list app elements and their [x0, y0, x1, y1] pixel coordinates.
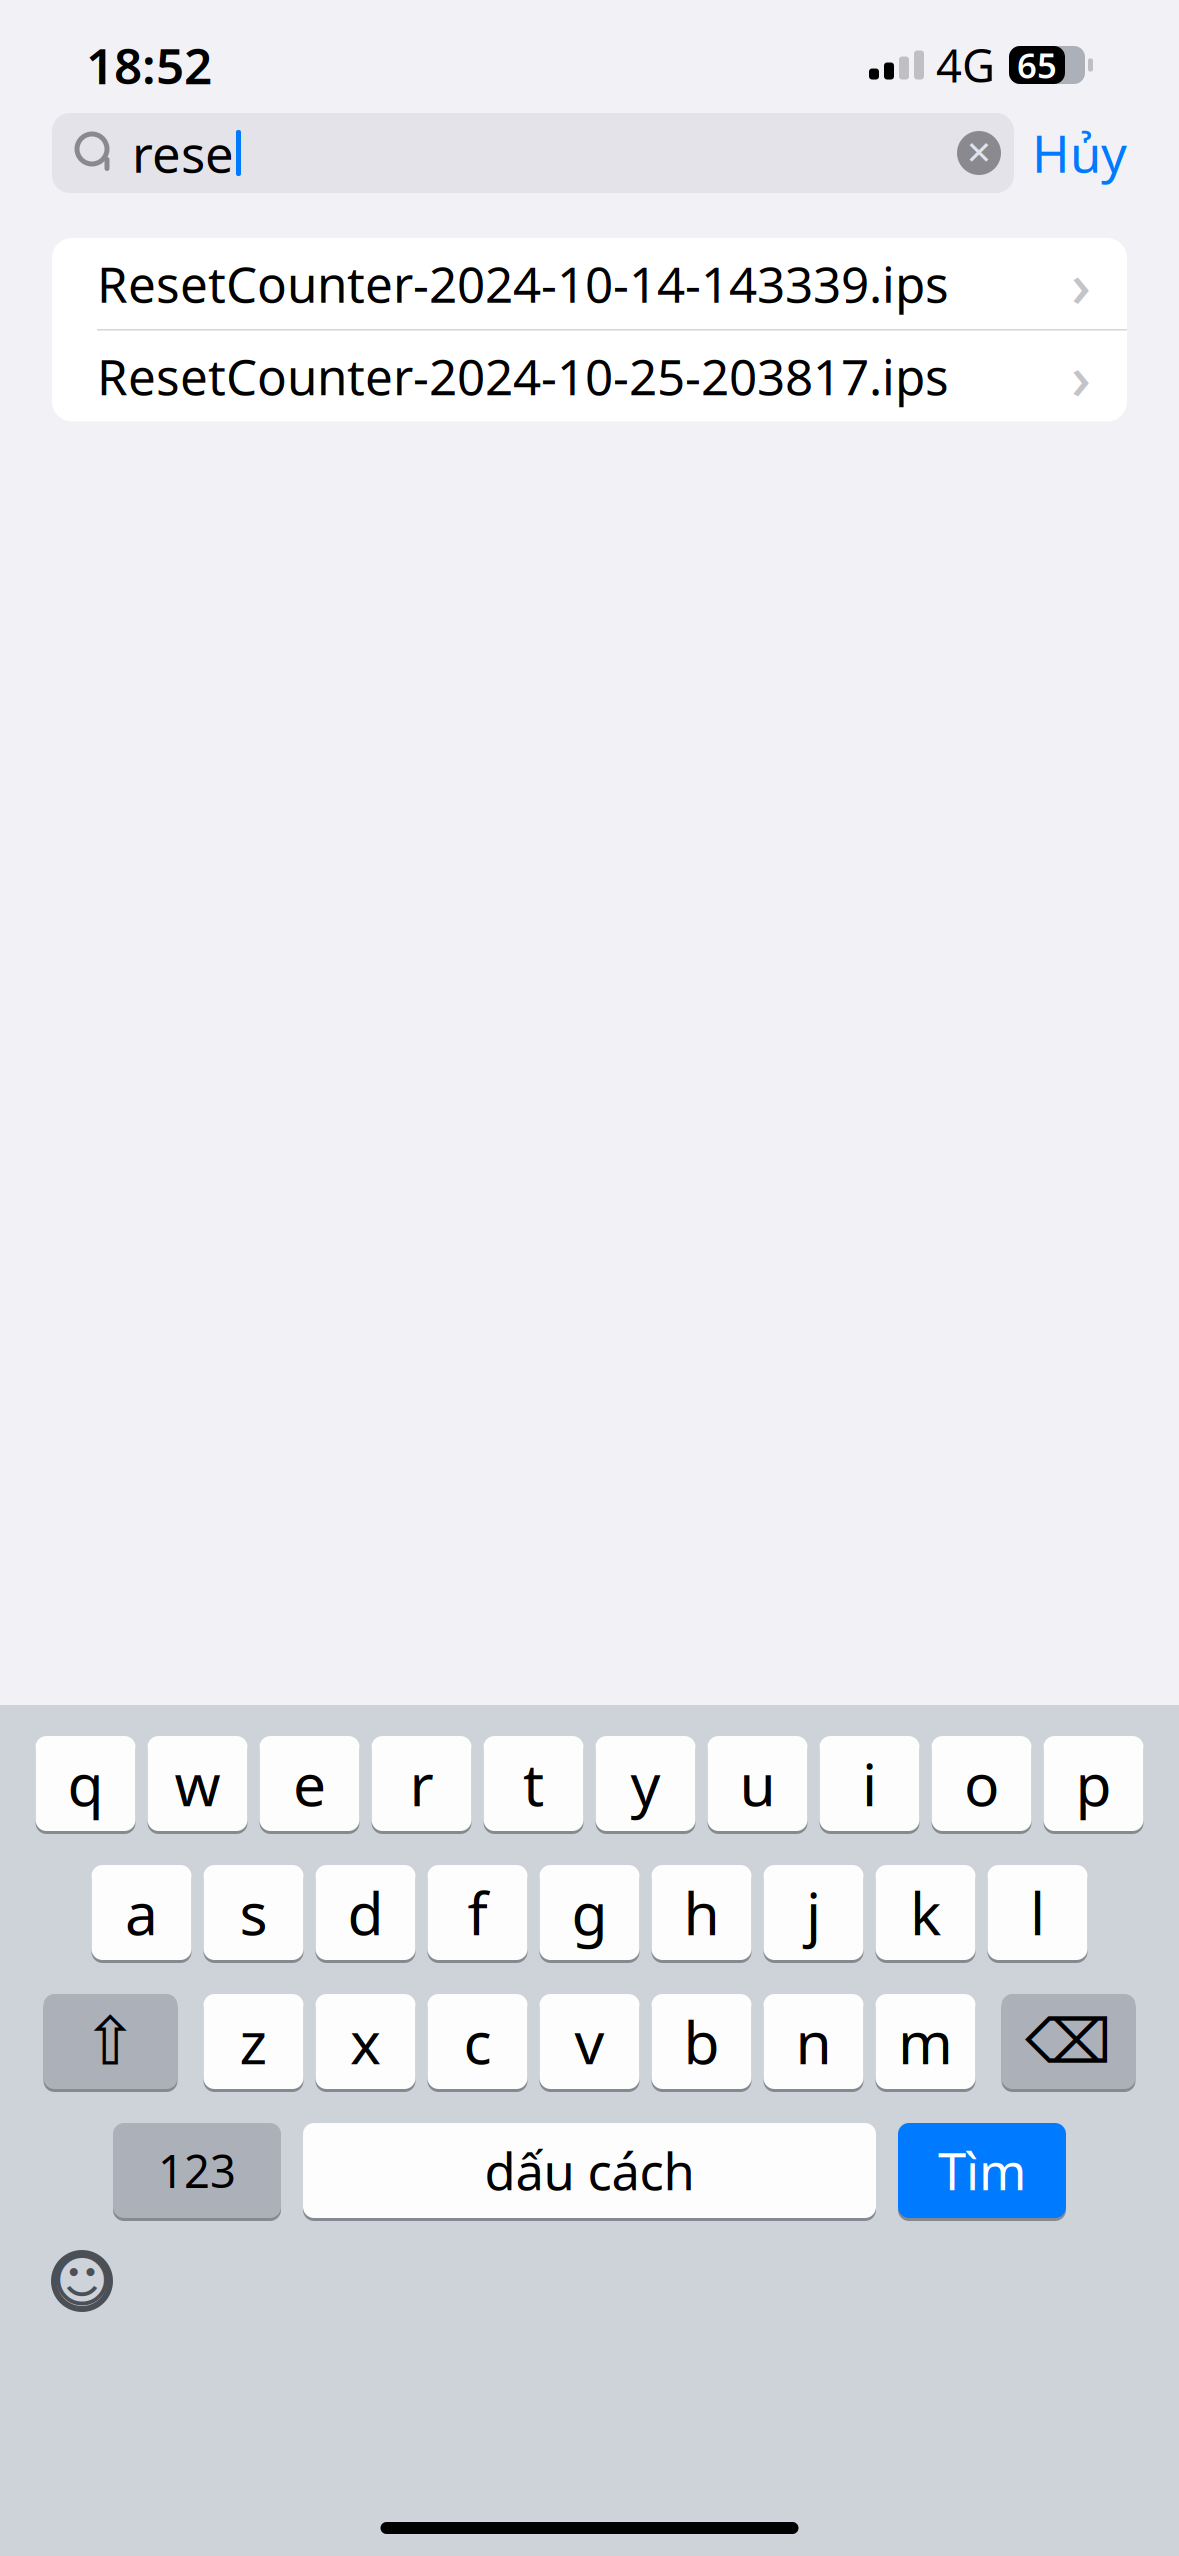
staticText: d	[347, 1873, 383, 1951]
button[interactable]: Hủy	[1014, 113, 1145, 193]
staticText: ResetCounter-2024-10-14-143339.ips	[97, 251, 949, 316]
staticText: ›	[1071, 335, 1091, 417]
button[interactable]: i	[819, 1733, 919, 1834]
staticText: 4G	[936, 35, 995, 95]
staticText: ›	[1071, 243, 1091, 324]
button[interactable]: x	[315, 1991, 415, 2092]
staticText: ⇧	[82, 2004, 138, 2079]
button[interactable]: q	[35, 1733, 135, 1834]
button[interactable]: dấu cách	[303, 2120, 876, 2221]
staticText: rese	[132, 119, 234, 187]
staticText: ResetCounter-2024-10-25-203817.ips	[97, 343, 949, 409]
staticText: t	[523, 1744, 544, 1822]
staticText: u	[739, 1744, 775, 1822]
staticText: r	[409, 1744, 433, 1822]
button[interactable]: w	[147, 1733, 247, 1834]
staticText: p	[1075, 1744, 1111, 1822]
staticText: g	[571, 1873, 607, 1951]
staticText: Tìm	[938, 2137, 1026, 2204]
button[interactable]: Tìm	[898, 2120, 1066, 2221]
button[interactable]: u	[707, 1733, 807, 1834]
staticText: 65	[1017, 42, 1057, 88]
button[interactable]: d	[315, 1862, 415, 1963]
button[interactable]: f	[427, 1862, 527, 1963]
button[interactable]: l	[987, 1862, 1087, 1963]
button[interactable]: r	[371, 1733, 471, 1834]
button[interactable]: e	[259, 1733, 359, 1834]
staticText: l	[1030, 1873, 1045, 1951]
staticText: m	[898, 2002, 953, 2080]
button[interactable]: ResetCounter-2024-10-25-203817.ips	[52, 330, 1127, 421]
staticText: y	[630, 1744, 660, 1822]
button[interactable]: s	[203, 1862, 303, 1963]
staticText: ⌫	[1025, 2007, 1112, 2076]
button[interactable]: y	[595, 1733, 695, 1834]
button[interactable]: b	[651, 1991, 751, 2092]
staticText: q	[67, 1744, 103, 1822]
button[interactable]: Clear text	[944, 118, 1014, 188]
button[interactable]: a	[91, 1862, 191, 1963]
staticText: o	[964, 1744, 999, 1822]
staticText: j	[806, 1873, 821, 1951]
button[interactable]: Emoji keyboard	[36, 2235, 128, 2327]
button[interactable]: ResetCounter-2024-10-14-143339.ips	[52, 238, 1127, 329]
staticText: s	[239, 1873, 267, 1951]
staticText: v	[574, 2002, 604, 2080]
staticText: b	[683, 2002, 719, 2080]
button[interactable]: p	[1043, 1733, 1143, 1834]
staticText: i	[862, 1744, 877, 1822]
button[interactable]: Shift	[43, 1991, 177, 2092]
button[interactable]: z	[203, 1991, 303, 2092]
button[interactable]: g	[539, 1862, 639, 1963]
staticText: e	[293, 1744, 326, 1822]
staticText: f	[467, 1873, 487, 1951]
button[interactable]: c	[427, 1991, 527, 2092]
button[interactable]: t	[483, 1733, 583, 1834]
staticText: dấu cách	[484, 2137, 694, 2204]
staticText: k	[910, 1873, 941, 1951]
staticText: c	[463, 2002, 491, 2080]
staticText: 123	[158, 2140, 236, 2201]
button[interactable]: k	[875, 1862, 975, 1963]
button[interactable]: n	[763, 1991, 863, 2092]
staticText: a	[125, 1873, 158, 1951]
button[interactable]: j	[763, 1862, 863, 1963]
staticText: h	[683, 1873, 719, 1951]
staticText: x	[350, 2002, 381, 2080]
button[interactable]: h	[651, 1862, 751, 1963]
button[interactable]: v	[539, 1991, 639, 2092]
button[interactable]: o	[931, 1733, 1031, 1834]
staticText: ✕	[965, 135, 992, 171]
staticText: z	[239, 2002, 267, 2080]
staticText: ☺	[51, 2248, 112, 2314]
staticText: w	[174, 1744, 220, 1822]
button[interactable]: m	[875, 1991, 975, 2092]
button[interactable]: 123	[113, 2120, 281, 2221]
button[interactable]: Delete	[1001, 1991, 1135, 2092]
staticText: 18:52	[86, 32, 212, 98]
staticText: n	[795, 2002, 831, 2080]
staticText: Hủy	[1032, 119, 1127, 187]
